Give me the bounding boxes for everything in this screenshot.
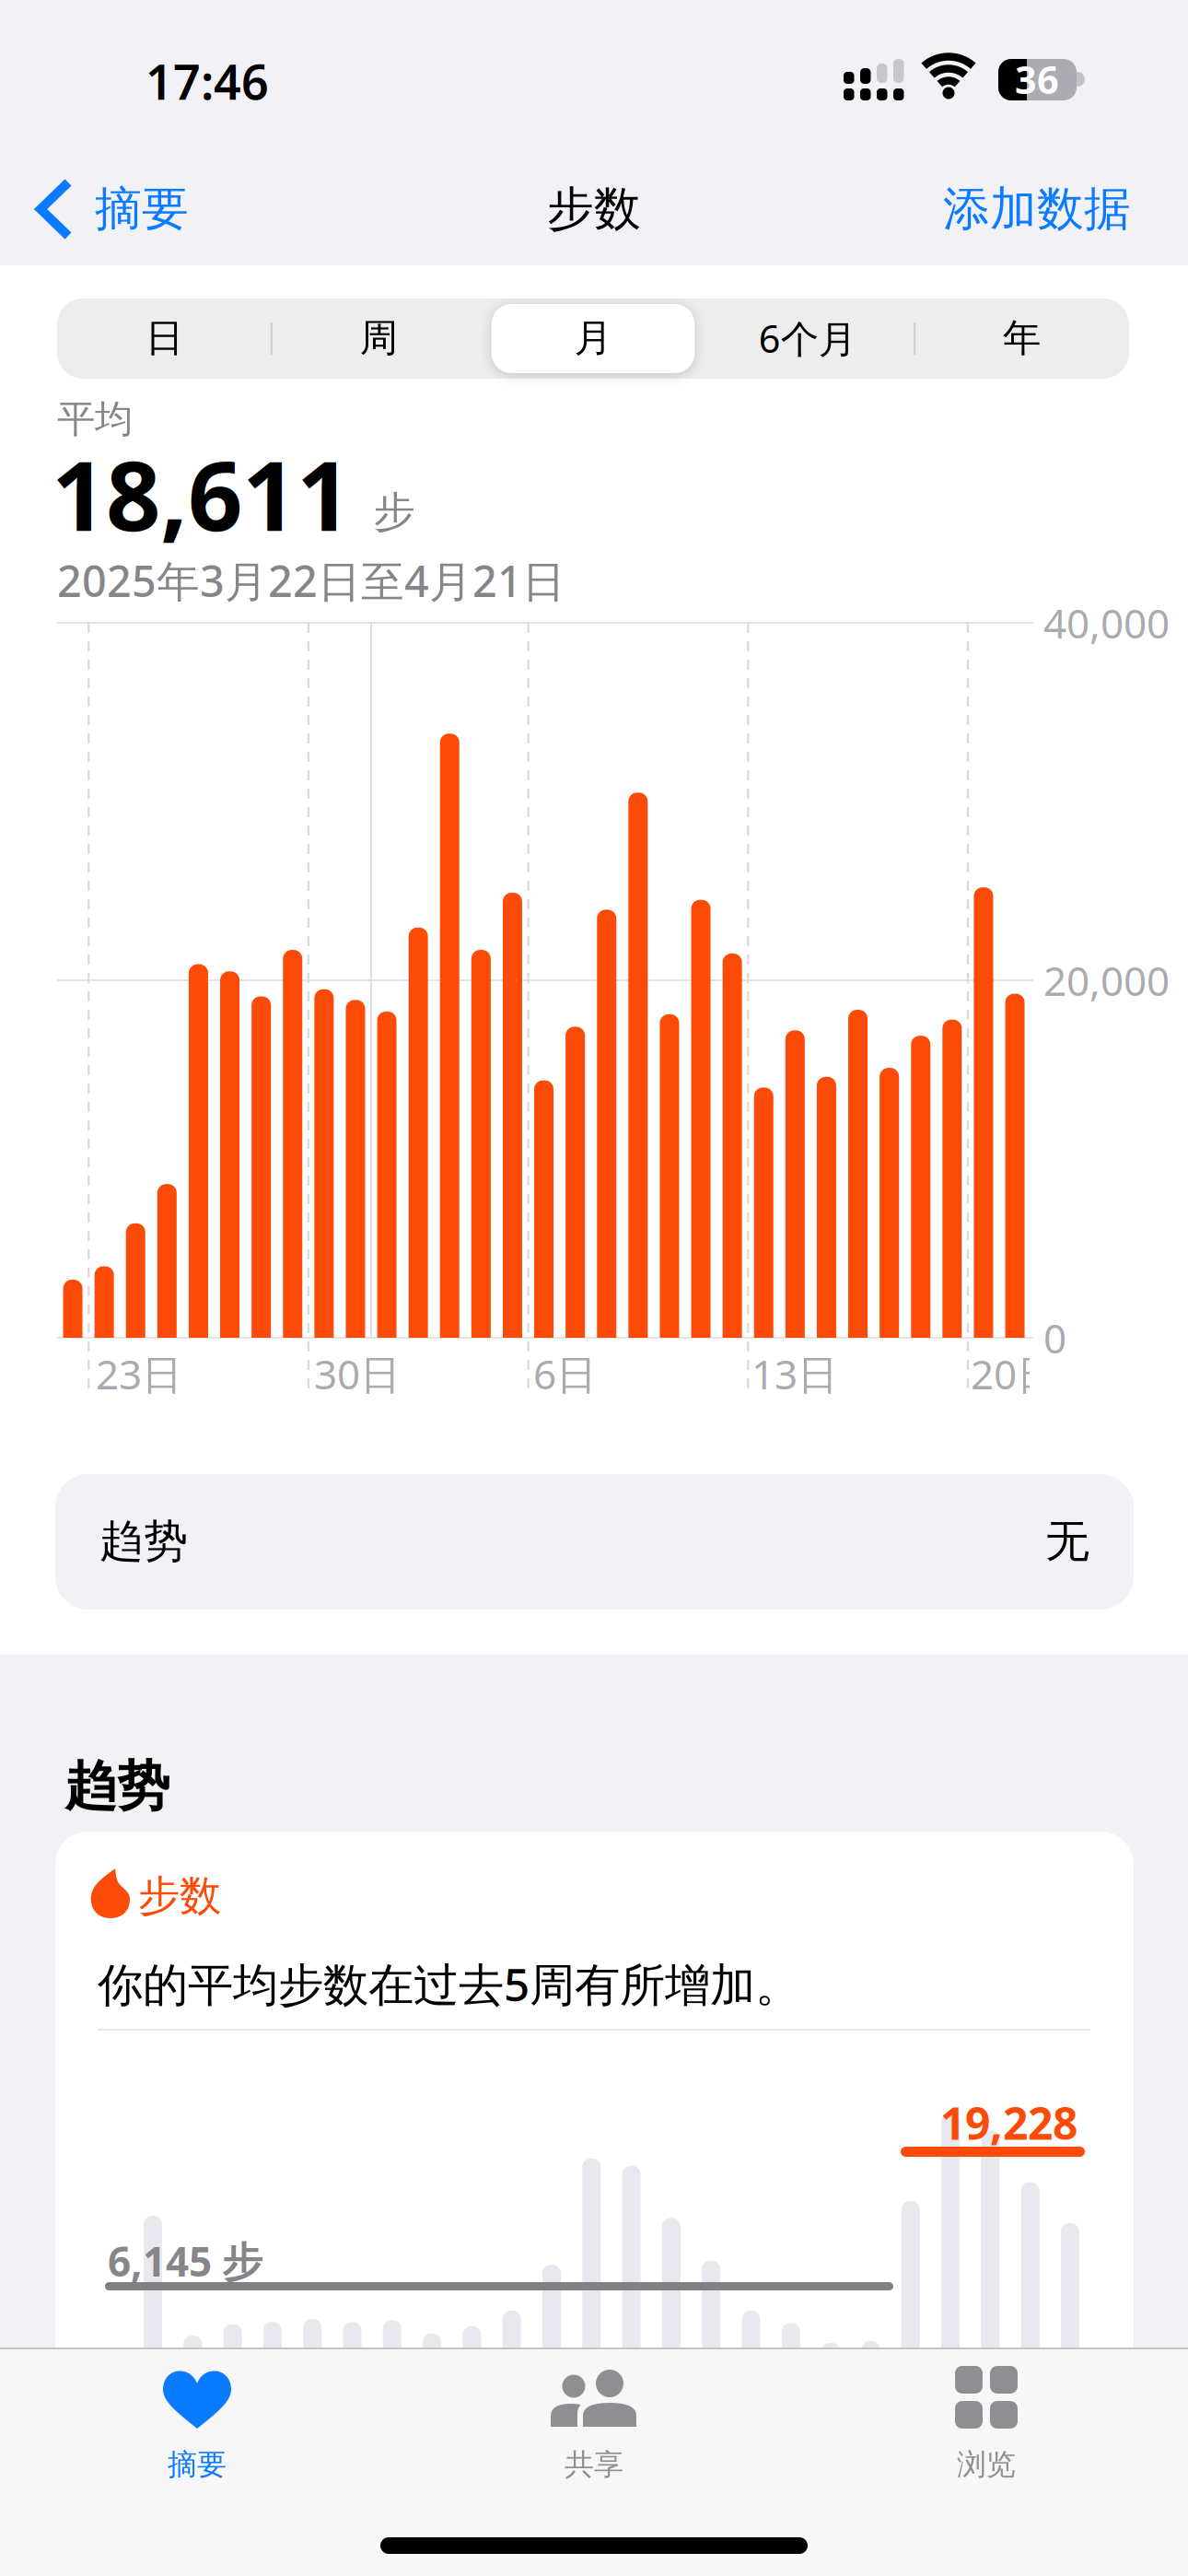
button[interactable]: 6个月: [700, 298, 915, 378]
staticText: 30日: [314, 1347, 401, 1401]
staticText: 19,228: [940, 2093, 1077, 2152]
staticText: 步数: [138, 1870, 221, 1922]
staticText: 摘要: [168, 2446, 227, 2483]
staticText: 40,000: [1043, 596, 1170, 650]
button[interactable]: 周: [271, 298, 486, 378]
button[interactable]: 摘要: [59, 2355, 335, 2493]
staticText: 6个月: [759, 313, 856, 363]
button[interactable]: 浏览: [848, 2355, 1124, 2493]
button[interactable]: 月: [486, 298, 700, 378]
staticText: 6日: [533, 1347, 597, 1401]
staticText: 平均: [57, 396, 133, 443]
staticText: 日: [145, 315, 183, 362]
staticText: 趋势: [99, 1514, 188, 1569]
staticText: 步: [373, 487, 415, 538]
staticText: 13日: [751, 1347, 838, 1401]
button[interactable]: 返回摘要: [26, 161, 247, 263]
staticText: 浏览: [957, 2446, 1016, 2483]
button[interactable]: 添加数据: [855, 177, 1131, 241]
staticText: 共享: [565, 2446, 623, 2483]
staticText: 周: [360, 315, 398, 362]
staticText: 添加数据: [943, 180, 1131, 238]
staticText: 23日: [96, 1347, 182, 1401]
staticText: 18,611: [52, 430, 351, 557]
staticText: 趋势: [64, 1754, 169, 1819]
staticText: 步数: [547, 180, 641, 238]
staticText: 年: [1003, 315, 1041, 362]
staticText: 36: [1015, 54, 1059, 105]
staticText: 20,000: [1043, 953, 1170, 1007]
staticText: 17:46: [146, 49, 269, 113]
staticText: 无: [1045, 1514, 1089, 1569]
staticText: 摘要: [95, 180, 189, 238]
staticText: 0: [1043, 1311, 1066, 1365]
staticText: 20日: [971, 1347, 1057, 1401]
staticText: 2025年3月22日至4月21日: [57, 552, 565, 609]
staticText: 你的平均步数在过去5周有所增加。: [98, 1953, 800, 2014]
staticText: 6,145 步: [108, 2234, 262, 2288]
staticText: 月: [574, 315, 612, 362]
button[interactable]: 年: [915, 298, 1129, 378]
button[interactable]: 共享: [456, 2355, 732, 2493]
button[interactable]: 日: [57, 298, 271, 378]
